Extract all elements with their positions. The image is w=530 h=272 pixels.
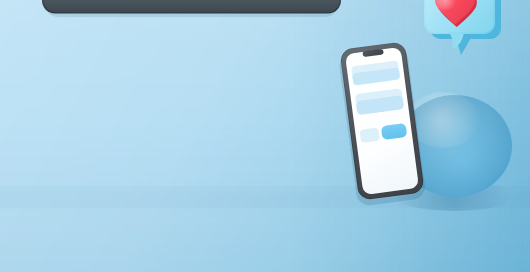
button[interactable]: Mobile app illustration with like notifi…: [0, 0, 530, 272]
